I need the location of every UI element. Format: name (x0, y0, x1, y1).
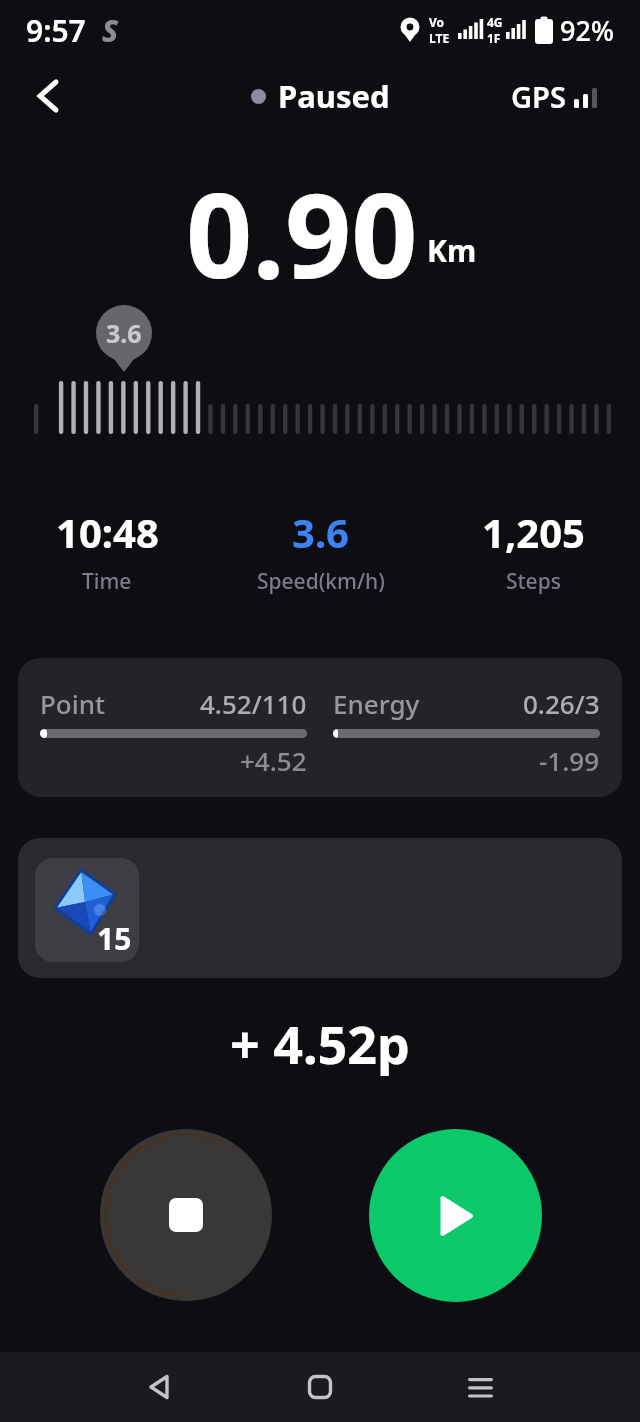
staticText: 9:57 (26, 10, 86, 51)
staticText: + 4.52p (230, 1008, 410, 1076)
staticText: Vo (429, 14, 445, 30)
staticText: +4.52 (240, 743, 307, 778)
button[interactable]: GPS (511, 77, 602, 116)
staticText: Speed(km/h) (257, 567, 385, 596)
button[interactable]: 15 (35, 858, 139, 962)
staticText: -1.99 (539, 743, 600, 778)
staticText: 3.6 (292, 505, 349, 559)
staticText: 15 (97, 918, 132, 959)
button[interactable] (100, 1129, 272, 1301)
button[interactable] (369, 1129, 542, 1302)
staticText: Km (427, 230, 477, 271)
button[interactable] (120, 1352, 200, 1422)
staticText: S (102, 10, 119, 51)
staticText: 4.52/110 (200, 686, 307, 721)
staticText: Steps (506, 567, 561, 596)
staticText: 1,205 (482, 505, 585, 559)
staticText: GPS (511, 77, 566, 116)
staticText: 0.26/3 (523, 686, 600, 721)
staticText: 92% (560, 12, 614, 49)
staticText: Point (40, 686, 106, 721)
button[interactable] (24, 72, 72, 120)
staticText: LTE (429, 30, 450, 46)
staticText: Time (82, 567, 132, 596)
button[interactable] (440, 1352, 520, 1422)
staticText: 4G (487, 14, 503, 30)
staticText: Energy (333, 686, 420, 721)
button[interactable] (280, 1352, 360, 1422)
staticText: 1F (487, 30, 501, 46)
staticText: 10:48 (56, 505, 159, 559)
staticText: 0.90 (186, 154, 418, 312)
staticText: 3.6 (106, 316, 142, 350)
staticText: Paused (278, 75, 390, 117)
